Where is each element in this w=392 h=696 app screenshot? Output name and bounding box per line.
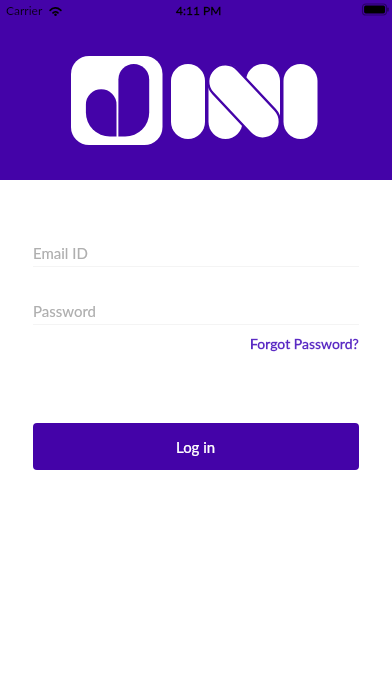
- other: Wi-Fi: [48, 5, 63, 16]
- button[interactable]: Log in: [33, 423, 359, 470]
- button[interactable]: Password: [33, 302, 359, 325]
- button[interactable]: Email ID: [33, 244, 359, 267]
- button[interactable]: Forgot Password?: [250, 335, 359, 352]
- staticText: Email ID: [33, 244, 88, 262]
- staticText: 4:11 PM: [176, 3, 222, 17]
- staticText: Log in: [176, 438, 216, 456]
- staticText: Password: [33, 302, 96, 320]
- staticText: Carrier: [6, 3, 43, 17]
- staticText: Forgot Password?: [250, 335, 359, 352]
- other: Battery: [362, 4, 388, 15]
